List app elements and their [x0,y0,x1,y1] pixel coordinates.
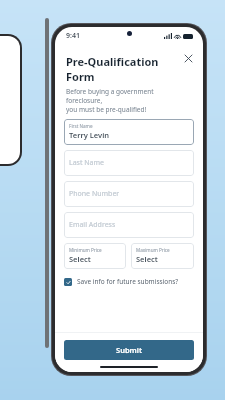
button[interactable]: Submit [64,340,194,360]
button[interactable]: Close [181,51,195,65]
staticText: Before buying a government foreclosure, … [66,87,177,114]
button[interactable]: Maximum Price [131,243,194,269]
staticText: Save info for future submissions? [77,277,179,286]
staticText: Select [69,254,91,264]
button[interactable]: Minimum Price [64,243,126,269]
button[interactable]: Last Name [64,150,194,176]
staticText: Select [136,254,158,264]
staticText: Submit [116,345,142,355]
button[interactable]: Email Address [64,212,194,238]
staticText: Pre-Qualification Form [66,54,177,84]
staticText: Email Address [69,220,116,230]
staticText: Last Name [69,158,105,168]
button[interactable]: Save info for future submissions? [64,276,194,287]
staticText: Terry Levin [69,130,110,140]
staticText: Maximum Price [136,247,170,253]
staticText: 9:41 [66,31,80,41]
button[interactable]: First Name [64,119,194,145]
staticText: Phone Number [69,189,120,199]
staticText: Minimum Price [69,247,102,253]
button[interactable]: Phone Number [64,181,194,207]
staticText: First Name [69,123,93,129]
